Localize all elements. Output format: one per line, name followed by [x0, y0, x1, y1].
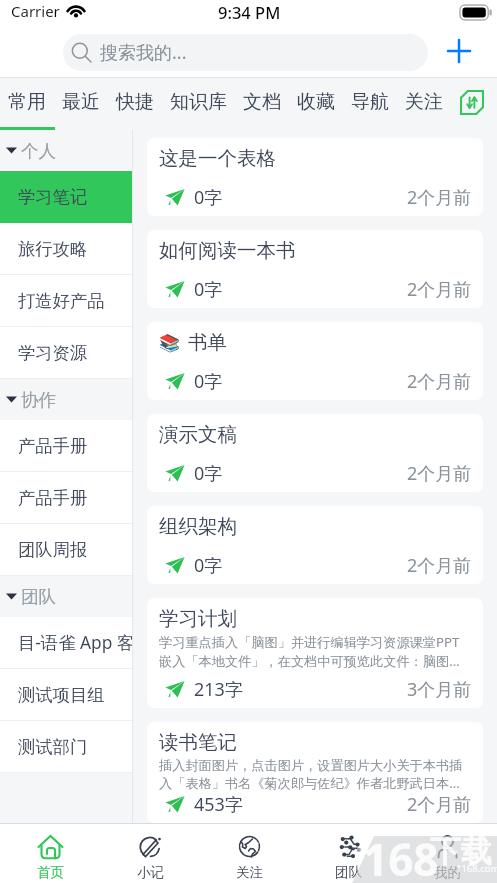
- staticText: 学习计划: [159, 606, 237, 631]
- staticText: 搜索我的...: [100, 40, 187, 65]
- staticText: 导航: [351, 90, 389, 114]
- staticText: 演示文稿: [159, 422, 237, 447]
- staticText: 知识库: [170, 90, 227, 114]
- staticText: Carrier: [11, 1, 60, 21]
- button[interactable]: 读书笔记: [147, 722, 483, 823]
- button[interactable]: 快捷: [108, 78, 162, 130]
- staticText: 9:34 PM: [218, 1, 281, 23]
- staticText: 213字: [194, 677, 243, 702]
- staticText: 2个月前: [407, 553, 472, 578]
- button[interactable]: 产品手册: [0, 420, 132, 472]
- staticText: 关注: [405, 90, 443, 114]
- staticText: 2个月前: [407, 461, 472, 486]
- button[interactable]: 团队: [0, 576, 132, 617]
- staticText: 插入封面图片，点击图片，设置图片大小关于本书插 入「表格」书名《菊次郎与佐纪》作…: [159, 757, 463, 792]
- staticText: 168: [363, 829, 439, 883]
- staticText: 这是一个表格: [159, 146, 276, 171]
- button[interactable]: 收藏: [289, 78, 343, 130]
- staticText: 小记: [137, 864, 164, 881]
- staticText: 产品手册: [18, 487, 132, 509]
- button[interactable]: 个人: [0, 130, 132, 171]
- button[interactable]: 团队: [299, 824, 398, 883]
- staticText: 组织架构: [159, 514, 237, 539]
- staticText: 2个月前: [407, 792, 472, 817]
- staticText: 常用: [8, 90, 46, 114]
- staticText: 我的: [434, 864, 461, 881]
- staticText: 453字: [194, 792, 243, 817]
- staticText: 个人: [21, 140, 56, 162]
- button[interactable]: 产品手册: [0, 472, 132, 524]
- staticText: 0字: [194, 461, 223, 486]
- button[interactable]: 最近: [54, 78, 108, 130]
- button[interactable]: 打造好产品: [0, 275, 132, 327]
- staticText: 书单: [188, 330, 227, 355]
- button[interactable]: 如何阅读一本书: [147, 230, 483, 308]
- button[interactable]: 学习资源: [0, 327, 132, 379]
- staticText: 2个月前: [407, 369, 472, 394]
- staticText: 产品手册: [18, 435, 132, 457]
- staticText: 2个月前: [407, 185, 472, 210]
- staticText: 学习笔记: [18, 186, 132, 208]
- staticText: 旅行攻略: [18, 238, 132, 260]
- staticText: 0字: [194, 185, 223, 210]
- button[interactable]: 协作: [0, 379, 132, 420]
- staticText: 下载: [430, 832, 492, 871]
- staticText: 首页: [37, 864, 64, 881]
- staticText: 如何阅读一本书: [159, 238, 296, 263]
- staticText: 团队: [335, 864, 362, 881]
- button[interactable]: 首页: [0, 824, 100, 883]
- button[interactable]: 演示文稿: [147, 414, 483, 492]
- staticText: 测试项目组: [18, 684, 132, 706]
- staticText: 最近: [62, 90, 100, 114]
- button[interactable]: 测试项目组: [0, 669, 132, 721]
- staticText: 关注: [236, 864, 263, 881]
- button[interactable]: New document: [436, 28, 482, 74]
- staticText: 📚: [159, 333, 181, 353]
- button[interactable]: 常用: [0, 78, 54, 130]
- button[interactable]: 搜索我的...: [63, 34, 428, 71]
- button[interactable]: 📚: [147, 322, 483, 400]
- button[interactable]: 关注: [397, 78, 451, 130]
- staticText: 测试部门: [18, 736, 132, 758]
- staticText: 3个月前: [407, 677, 472, 702]
- button[interactable]: 我的: [398, 824, 497, 883]
- staticText: 目-语雀 App 客户端: [18, 631, 132, 655]
- button[interactable]: 组织架构: [147, 506, 483, 584]
- staticText: 读书笔记: [159, 730, 237, 755]
- staticText: 收藏: [297, 90, 335, 114]
- button[interactable]: Sort: [459, 89, 485, 115]
- button[interactable]: 导航: [343, 78, 397, 130]
- staticText: 2个月前: [407, 277, 472, 302]
- staticText: 1168.com: [456, 862, 497, 875]
- button[interactable]: 知识库: [162, 78, 235, 130]
- button[interactable]: 目-语雀 App 客户端: [0, 617, 132, 669]
- button[interactable]: 小记: [100, 824, 200, 883]
- staticText: 学习重点插入「脑图」并进行编辑学习资源课堂PPT 嵌入「本地文件」，在文档中可预…: [159, 633, 460, 670]
- staticText: 0字: [194, 553, 223, 578]
- button[interactable]: 测试部门: [0, 721, 132, 773]
- staticText: 文档: [243, 90, 281, 114]
- staticText: 快捷: [116, 90, 154, 114]
- button[interactable]: 学习计划: [147, 598, 483, 708]
- staticText: 0字: [194, 369, 223, 394]
- button[interactable]: 这是一个表格: [147, 138, 483, 216]
- staticText: 打造好产品: [18, 290, 132, 312]
- staticText: 0字: [194, 277, 223, 302]
- staticText: 团队: [21, 586, 56, 608]
- button[interactable]: 关注: [200, 824, 299, 883]
- button[interactable]: 旅行攻略: [0, 223, 132, 275]
- button[interactable]: 团队周报: [0, 524, 132, 576]
- button[interactable]: 文档: [235, 78, 289, 130]
- button[interactable]: 学习笔记: [0, 171, 132, 223]
- staticText: 团队周报: [18, 539, 132, 561]
- staticText: 协作: [21, 389, 56, 411]
- staticText: 学习资源: [18, 342, 132, 364]
